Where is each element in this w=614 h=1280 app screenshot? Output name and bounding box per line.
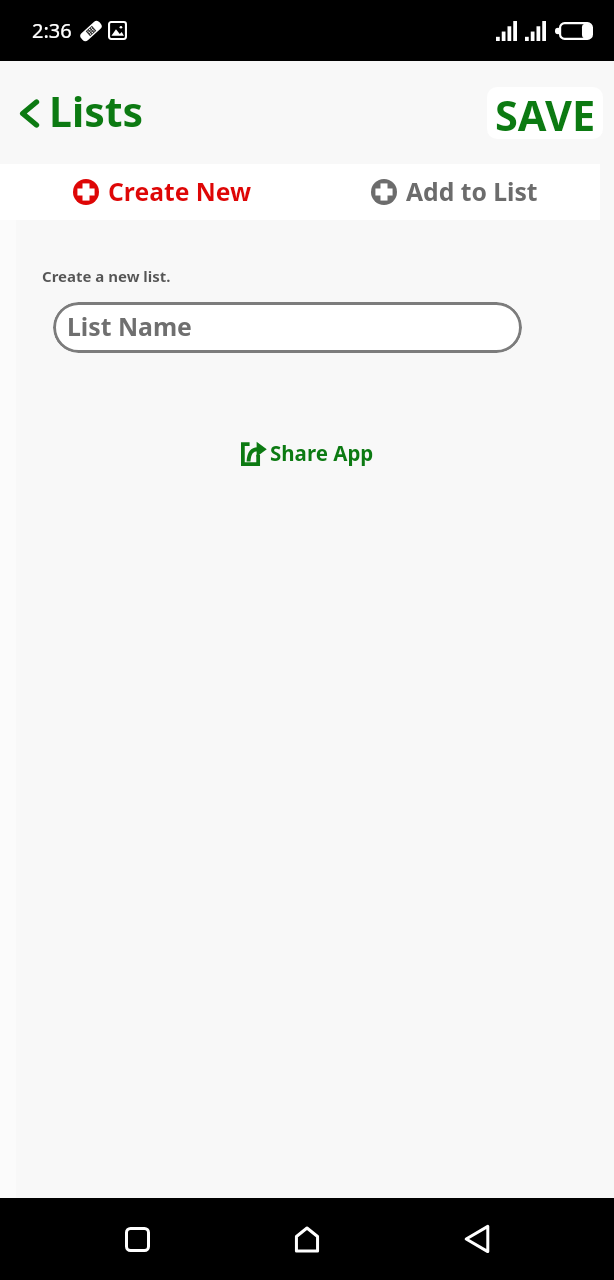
button[interactable]: Add to List xyxy=(300,164,600,220)
staticText: Create New xyxy=(108,175,252,209)
button[interactable]: Recent apps xyxy=(97,1199,177,1279)
staticText: Lists xyxy=(49,83,144,139)
button[interactable]: List Name xyxy=(53,302,522,353)
staticText: SAVE xyxy=(495,87,596,139)
staticText: List Name xyxy=(67,309,192,343)
button[interactable]: SAVE xyxy=(487,87,603,139)
staticText: Share App xyxy=(270,439,374,467)
staticText: Create a new list. xyxy=(42,266,171,286)
staticText: Add to List xyxy=(406,175,538,209)
button[interactable]: Back xyxy=(437,1199,517,1279)
button[interactable]: Home xyxy=(267,1199,347,1279)
button[interactable]: Share App xyxy=(241,439,374,467)
button[interactable]: Lists xyxy=(16,85,144,141)
button[interactable]: Create New xyxy=(0,164,300,220)
staticText: 2:36 xyxy=(32,17,72,44)
